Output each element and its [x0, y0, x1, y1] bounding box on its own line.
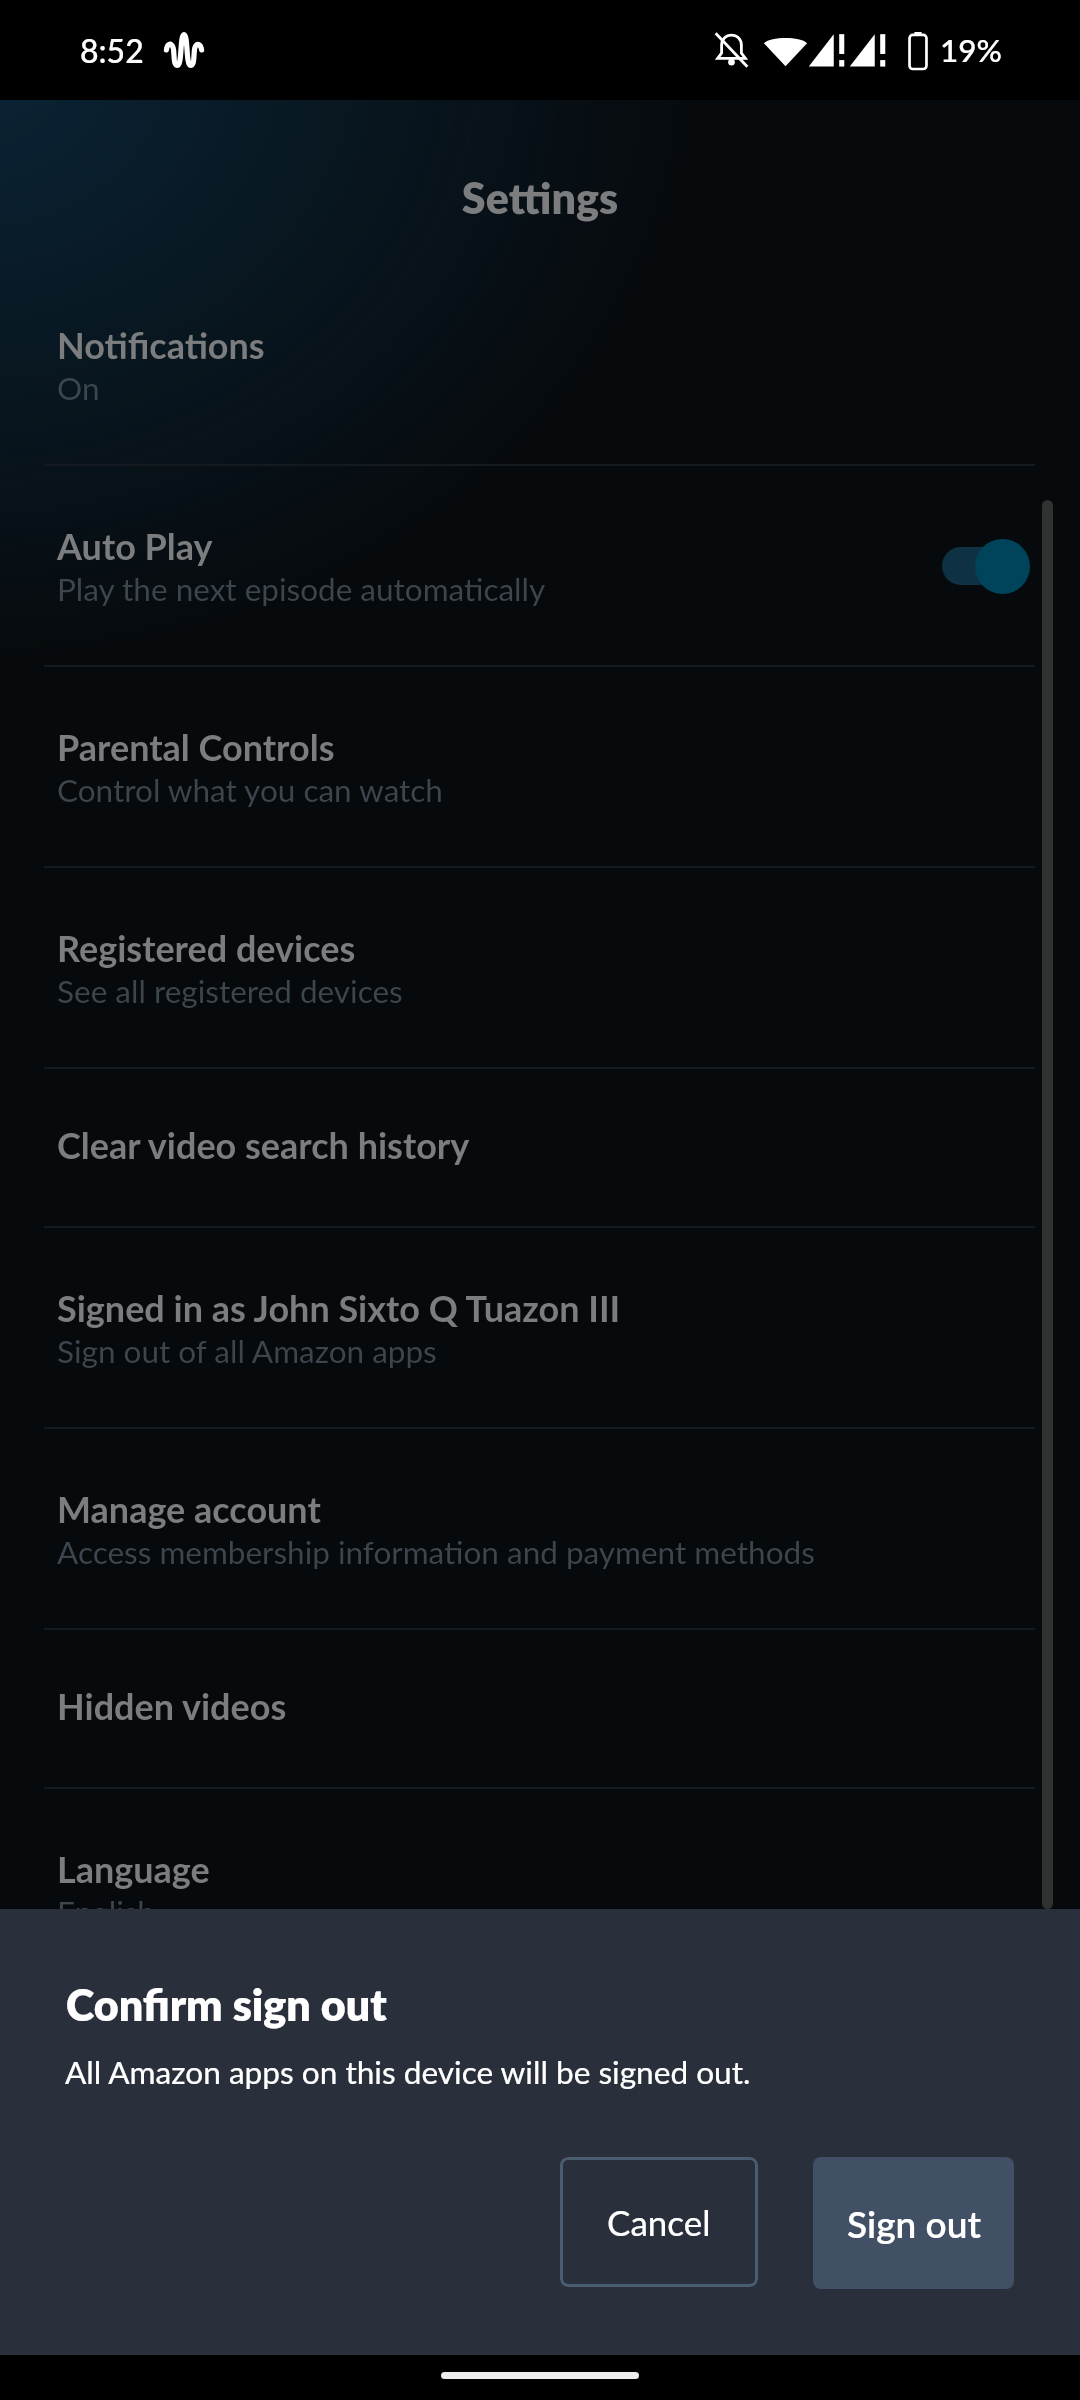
button[interactable]: Auto Play [0, 466, 1080, 665]
staticText: Parental Controls [57, 725, 335, 768]
staticText: On [57, 369, 100, 407]
staticText: Signed in as John Sixto Q Tuazon III [57, 1286, 621, 1329]
staticText: Cancel [607, 2201, 711, 2243]
button[interactable]: Cancel [560, 2157, 758, 2287]
staticText: Auto Play [57, 524, 213, 567]
staticText: See all registered devices [57, 972, 403, 1010]
staticText: Hidden videos [57, 1684, 287, 1727]
staticText: Sign out of all Amazon apps [57, 1332, 437, 1370]
staticText: Control what you can watch [57, 771, 443, 809]
staticText: English [57, 1893, 155, 1931]
staticText: Access membership information and paymen… [57, 1533, 815, 1571]
button[interactable]: Manage account [0, 1429, 1080, 1628]
staticText: Settings [0, 172, 1080, 224]
staticText: Notifications [57, 323, 265, 366]
button[interactable]: Hidden videos [0, 1630, 1080, 1787]
staticText: Sign out [847, 2201, 981, 2245]
button[interactable]: Sign out [813, 2157, 1014, 2289]
button[interactable]: Parental Controls [0, 667, 1080, 866]
staticText: Play the next episode automatically [57, 570, 546, 608]
staticText: Confirm sign out [66, 1979, 387, 2031]
button[interactable]: Notifications [0, 265, 1080, 464]
button[interactable]: Registered devices [0, 868, 1080, 1067]
staticText: 19% [940, 31, 1002, 69]
staticText: Clear video search history [57, 1123, 470, 1166]
staticText: 8:52 [80, 31, 144, 69]
button[interactable]: Signed in as John Sixto Q Tuazon III [0, 1228, 1080, 1427]
staticText: All Amazon apps on this device will be s… [65, 2053, 751, 2091]
staticText: Manage account [57, 1487, 321, 1530]
button[interactable]: Clear video search history [0, 1069, 1080, 1226]
staticText: Registered devices [57, 926, 356, 969]
button[interactable]: Auto Play toggle [942, 531, 1030, 601]
button[interactable]: Language [0, 1789, 1080, 1988]
staticText: Language [57, 1847, 210, 1890]
